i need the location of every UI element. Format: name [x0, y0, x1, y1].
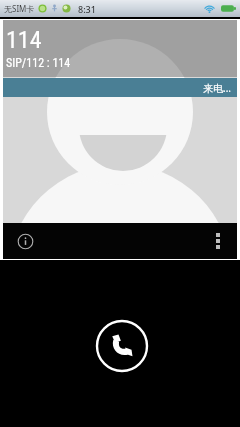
button[interactable]: Call details — [3, 223, 47, 259]
staticText: 8:31 — [78, 3, 96, 15]
button[interactable]: More options — [197, 223, 237, 259]
button[interactable]: Answer call — [94, 318, 150, 374]
staticText: 114 — [6, 26, 42, 54]
staticText: SIP/112 : 114 — [6, 56, 71, 70]
staticText: 来电... — [203, 81, 232, 95]
staticText: 无SIM卡 — [4, 3, 35, 14]
button[interactable]: 来电... — [3, 78, 237, 97]
